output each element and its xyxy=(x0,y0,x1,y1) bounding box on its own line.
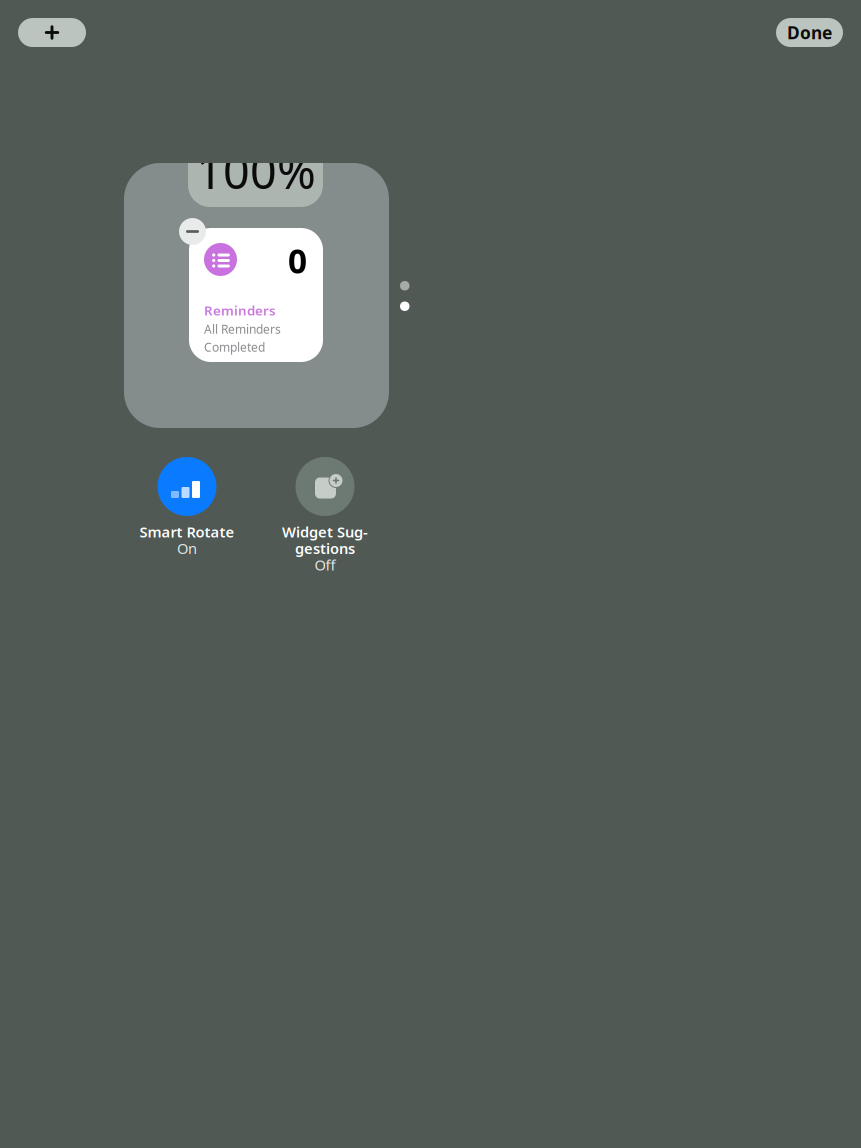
staticText: On xyxy=(177,538,197,558)
button[interactable]: Add Widget xyxy=(18,18,86,47)
button[interactable]: Remove Widget xyxy=(179,218,206,245)
staticText: gestions xyxy=(295,538,355,558)
button[interactable]: Done xyxy=(776,18,843,47)
staticText: Smart Rotate xyxy=(139,522,234,541)
staticText: Off xyxy=(314,555,335,574)
button[interactable]: Reminders widget stack xyxy=(124,163,389,428)
staticText: 100% xyxy=(196,140,316,202)
staticText: 0 xyxy=(288,238,307,283)
button[interactable]: Widget page, 2 of 2 xyxy=(400,281,409,311)
staticText: Widget Sug- xyxy=(282,522,368,541)
button[interactable]: Widget Sug- xyxy=(260,457,390,587)
button[interactable]: Smart Rotate xyxy=(122,457,252,587)
staticText: Done xyxy=(787,21,832,44)
staticText: Reminders xyxy=(204,301,276,319)
staticText: Completed xyxy=(204,339,265,355)
staticText: All Reminders xyxy=(204,321,281,337)
